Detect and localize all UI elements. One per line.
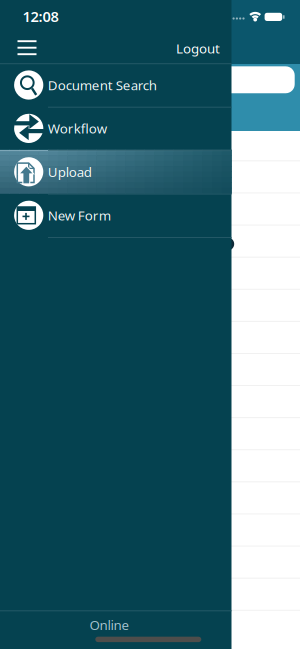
staticText: Logout <box>176 39 220 57</box>
staticText: 12:08 <box>22 7 58 26</box>
button[interactable]: Document Search <box>0 63 231 107</box>
staticText: Document Search <box>48 76 157 94</box>
button[interactable] <box>7 30 46 65</box>
button[interactable]: New Form <box>0 194 231 237</box>
staticText: Workflow <box>48 119 107 137</box>
button[interactable]: Logout <box>172 33 224 63</box>
button[interactable]: Upload <box>0 150 231 193</box>
staticText: New Form <box>48 206 111 224</box>
button[interactable]: Workflow <box>0 107 231 150</box>
staticText: Upload <box>48 163 92 181</box>
staticText: Online <box>89 616 129 634</box>
